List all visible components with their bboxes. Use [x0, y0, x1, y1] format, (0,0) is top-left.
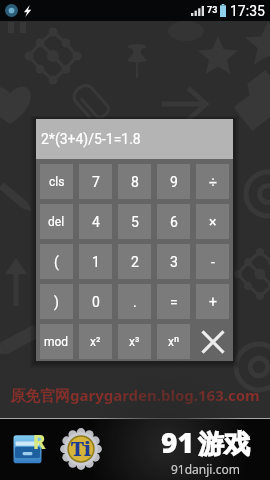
staticText: 73	[207, 5, 218, 16]
staticText: (	[54, 254, 59, 270]
button[interactable]: del	[40, 204, 73, 239]
button[interactable]: +	[196, 284, 229, 319]
staticText: ×	[209, 214, 217, 230]
button[interactable]: 5	[118, 204, 151, 239]
button[interactable]: -	[196, 244, 229, 279]
button[interactable]: .	[118, 284, 151, 319]
button[interactable]: 1	[79, 244, 112, 279]
staticText: 3	[170, 254, 178, 270]
button[interactable]: mod	[40, 324, 73, 359]
button[interactable]: =	[157, 284, 190, 319]
button[interactable]: xⁿ	[157, 324, 190, 359]
staticText: 91danji.com	[171, 461, 240, 477]
button[interactable]: 7	[79, 164, 112, 199]
button[interactable]: Titanium Backup	[62, 430, 100, 468]
button[interactable]: Root Explorer	[10, 431, 45, 466]
button[interactable]: x²	[79, 324, 112, 359]
staticText: 2	[131, 254, 139, 270]
button[interactable]: cls	[40, 164, 73, 199]
staticText: 游戏	[198, 428, 250, 461]
staticText: 0	[92, 294, 100, 310]
staticText: del	[48, 215, 65, 229]
staticText: 1	[92, 254, 100, 270]
staticText: 4	[92, 214, 100, 230]
staticText: 2*(3+4)/5-1=1.8	[41, 131, 141, 147]
staticText: 17:35	[230, 3, 265, 19]
staticText: xⁿ	[168, 335, 180, 349]
staticText: 8	[131, 174, 139, 190]
button[interactable]: 0	[79, 284, 112, 319]
button[interactable]: ÷	[196, 164, 229, 199]
staticText: 6	[170, 214, 178, 230]
button[interactable]: ×	[196, 204, 229, 239]
staticText: 7	[92, 174, 100, 190]
staticText: R	[33, 429, 46, 455]
button[interactable]: 4	[79, 204, 112, 239]
staticText: 9	[170, 174, 178, 190]
button[interactable]: (	[40, 244, 73, 279]
staticText: 原免官网garygarden.blog.163.com	[10, 385, 260, 405]
button[interactable]: x³	[118, 324, 151, 359]
button[interactable]: Close	[196, 324, 229, 359]
staticText: -	[211, 254, 215, 270]
staticText: cls	[49, 175, 65, 189]
staticText: mod	[44, 335, 69, 349]
staticText: x²	[90, 335, 101, 349]
button[interactable]: 3	[157, 244, 190, 279]
staticText: =	[170, 294, 178, 310]
staticText: Ti	[71, 436, 92, 462]
staticText: )	[54, 294, 59, 310]
staticText: ÷	[209, 174, 217, 190]
staticText: +	[209, 294, 217, 310]
button[interactable]: 2	[118, 244, 151, 279]
staticText: 91	[161, 423, 194, 461]
button[interactable]: 8	[118, 164, 151, 199]
button[interactable]: 6	[157, 204, 190, 239]
button[interactable]: )	[40, 284, 73, 319]
staticText: 5	[131, 214, 139, 230]
button[interactable]: 9	[157, 164, 190, 199]
staticText: x³	[129, 335, 140, 349]
staticText: .	[133, 294, 137, 310]
